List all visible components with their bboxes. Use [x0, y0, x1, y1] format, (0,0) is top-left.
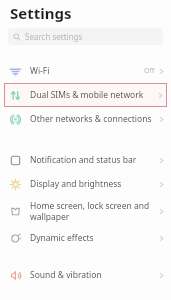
- staticText: Home screen, lock screen and wallpaper: [30, 200, 159, 222]
- button[interactable]: Sound & vibration: [0, 263, 171, 287]
- button[interactable]: Search settings: [8, 28, 163, 45]
- staticText: Off: [144, 66, 155, 76]
- staticText: Settings: [10, 3, 72, 23]
- button[interactable]: Other networks & connections: [0, 107, 171, 131]
- staticText: Wi-Fi: [30, 65, 144, 77]
- button[interactable]: Display and brightness: [0, 172, 171, 196]
- button[interactable]: Home screen, lock screen and wallpaper: [0, 196, 171, 226]
- button[interactable]: Dynamic effects: [0, 226, 171, 250]
- staticText: Sound & vibration: [30, 269, 159, 281]
- staticText: Dynamic effects: [30, 232, 159, 244]
- staticText: Notification and status bar: [30, 154, 159, 166]
- staticText: Dual SIMs & mobile network: [30, 89, 158, 101]
- staticText: Display and brightness: [30, 178, 159, 190]
- button[interactable]: Notification and status bar: [0, 148, 171, 172]
- staticText: Other networks & connections: [30, 113, 159, 125]
- button[interactable]: Wi-Fi: [0, 59, 171, 83]
- staticText: Search settings: [25, 31, 83, 42]
- button[interactable]: Dual SIMs & mobile network: [4, 83, 167, 107]
